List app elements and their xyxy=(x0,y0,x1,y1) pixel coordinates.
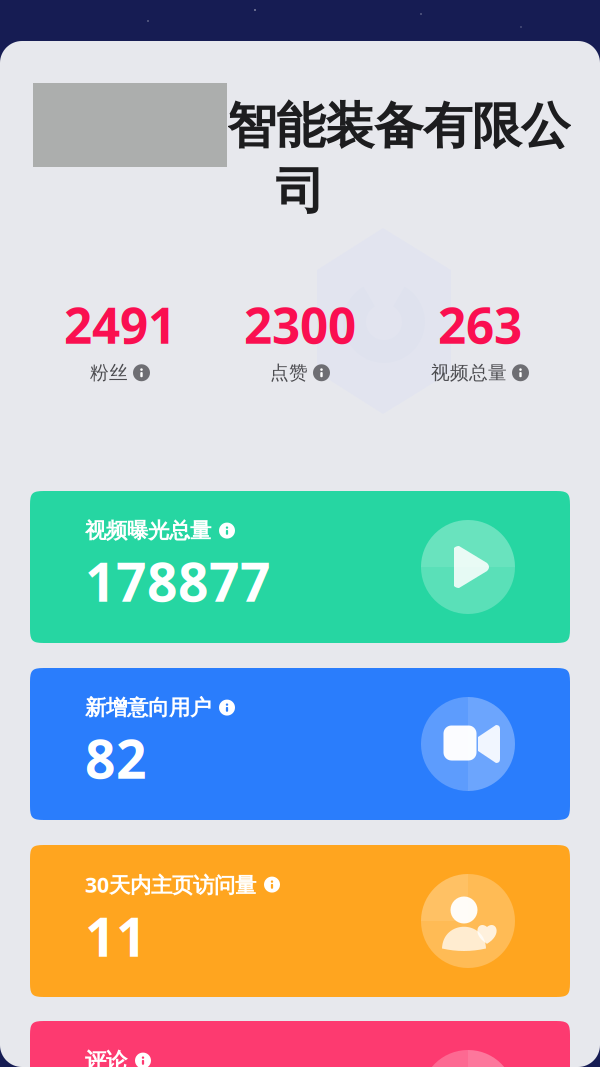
staticText: 30天内主页访问量 xyxy=(85,870,256,899)
staticText: 新增意向用户 xyxy=(85,694,211,721)
staticText: 点赞 xyxy=(270,361,308,384)
staticText: 司 xyxy=(275,161,324,221)
button[interactable]: 30天内主页访问量 xyxy=(30,845,570,997)
button[interactable]: 新增意向用户 xyxy=(30,668,570,820)
button[interactable]: 2491 xyxy=(30,290,210,386)
staticText: 评论 xyxy=(85,1047,127,1067)
staticText: 263 xyxy=(438,292,522,357)
staticText: 智能装备有限公 xyxy=(227,96,570,156)
button[interactable]: 2300 xyxy=(210,290,390,386)
button[interactable]: 视频曝光总量 xyxy=(30,491,570,643)
staticText: 2491 xyxy=(64,292,176,357)
staticText: 视频总量 xyxy=(431,361,507,384)
staticText: 2300 xyxy=(244,292,356,357)
staticText: 粉丝 xyxy=(90,361,128,384)
staticText: 视频曝光总量 xyxy=(85,517,211,544)
staticText: 11 xyxy=(85,901,147,972)
button[interactable]: 263 xyxy=(390,290,570,386)
staticText: 82 xyxy=(85,723,147,793)
button[interactable]: 评论 xyxy=(30,1021,570,1067)
staticText: 178877 xyxy=(85,546,271,616)
